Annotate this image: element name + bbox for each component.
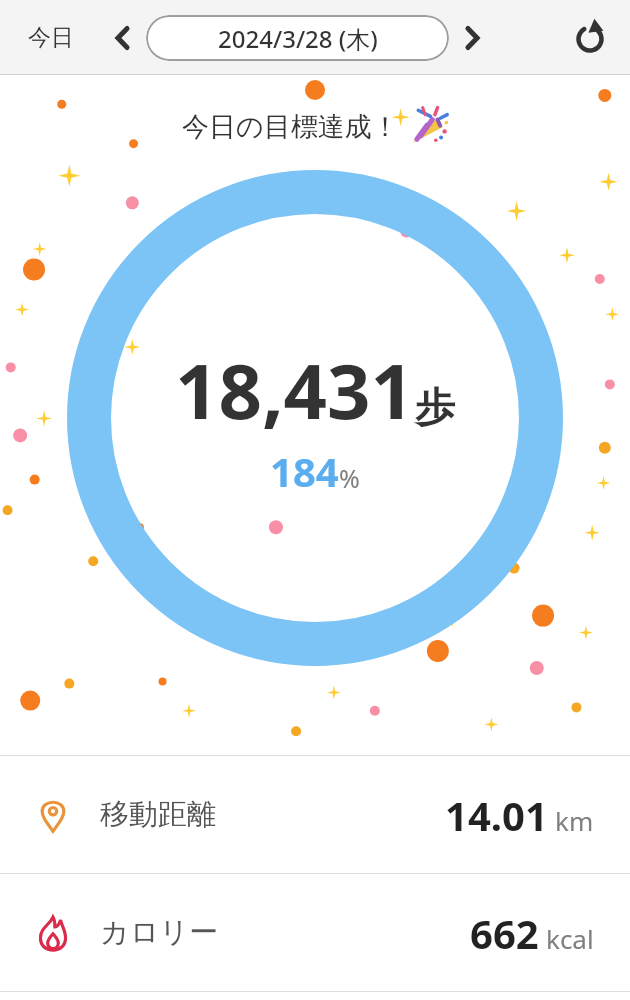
staticText: 18,431 bbox=[175, 338, 415, 442]
staticText: 184 bbox=[270, 444, 339, 498]
staticText: kcal bbox=[546, 921, 594, 956]
staticText: km bbox=[555, 803, 594, 838]
staticText: 今日の目標達成！ bbox=[182, 110, 399, 144]
staticText: % bbox=[339, 461, 360, 495]
button[interactable]: カロリー bbox=[0, 874, 630, 991]
staticText: 歩 bbox=[415, 382, 455, 432]
staticText: 14.01 bbox=[445, 788, 548, 842]
staticText: カロリー bbox=[100, 914, 219, 951]
button[interactable]: 2024/3/28 (木) bbox=[146, 15, 449, 61]
button[interactable]: 今日 bbox=[18, 15, 84, 60]
staticText: 今日 bbox=[28, 23, 74, 52]
button[interactable]: Previous day bbox=[106, 21, 140, 55]
button[interactable]: 移動距離 bbox=[0, 756, 630, 873]
staticText: 2024/3/28 (木) bbox=[218, 22, 378, 55]
button[interactable]: Refresh bbox=[568, 16, 612, 60]
button[interactable]: Next day bbox=[455, 21, 489, 55]
staticText: 662 bbox=[470, 906, 539, 960]
staticText: 移動距離 bbox=[100, 796, 216, 833]
